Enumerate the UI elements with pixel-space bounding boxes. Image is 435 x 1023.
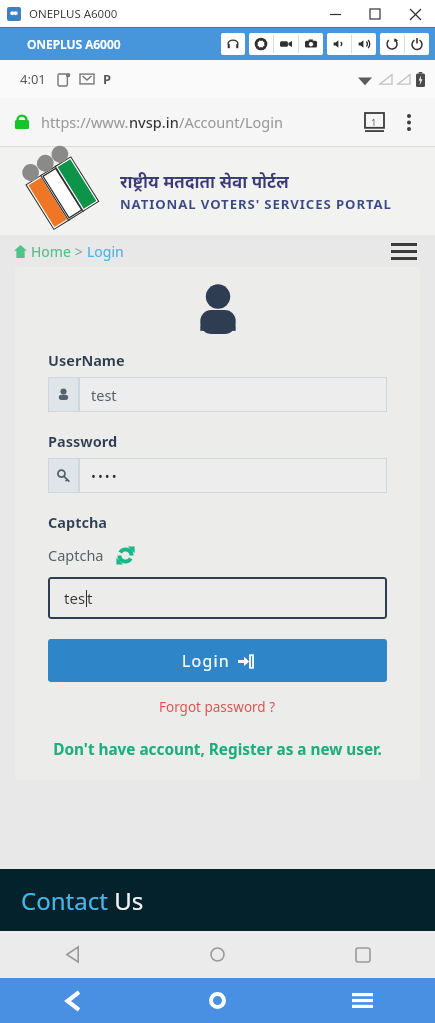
staticText: nvsp.in <box>129 112 179 132</box>
staticText: Password <box>48 431 118 451</box>
button[interactable]: tes <box>48 577 387 619</box>
staticText: Captcha <box>48 512 108 532</box>
button[interactable]: •••• <box>48 458 387 493</box>
button[interactable]: power <box>405 33 429 55</box>
button[interactable]: Home <box>145 931 290 978</box>
button[interactable]: vol+ <box>352 33 376 55</box>
staticText: ONEPLUS A6000 <box>27 36 121 52</box>
staticText: •••• <box>91 467 119 485</box>
staticText: test <box>91 385 117 405</box>
button[interactable]: gear <box>249 33 273 55</box>
button[interactable]: Home <box>145 978 290 1023</box>
staticText: Us <box>108 884 144 917</box>
staticText: ONEPLUS A6000 <box>29 6 118 22</box>
staticText: tes <box>64 588 86 608</box>
staticText: UserName <box>48 350 125 370</box>
staticText: Captcha <box>48 545 104 565</box>
staticText: Home <box>31 242 71 261</box>
button[interactable]: Menu <box>290 978 435 1023</box>
button[interactable]: Refresh captcha <box>114 544 136 566</box>
button[interactable]: Back <box>0 931 145 978</box>
staticText: https://www. <box>41 112 129 132</box>
staticText: Login <box>182 650 230 672</box>
button[interactable]: Contact <box>0 869 435 931</box>
button[interactable]: Login <box>48 639 387 682</box>
button[interactable]: Forgot password ? <box>159 698 276 716</box>
button[interactable]: video <box>274 33 298 55</box>
button[interactable]: refresh <box>380 33 404 55</box>
button[interactable]: Back <box>0 978 145 1023</box>
button[interactable]: Menu <box>389 236 419 266</box>
staticText: > <box>71 242 87 261</box>
button[interactable]: https://www. <box>0 98 435 146</box>
button[interactable]: Don't have account, Register as a new us… <box>53 739 382 760</box>
staticText: P <box>103 70 112 88</box>
button[interactable]: More options <box>397 110 421 134</box>
staticText: राष्ट्रीय मतदाता सेवा पोर्टल <box>120 170 289 193</box>
button[interactable]: Recents <box>290 931 435 978</box>
staticText: t <box>87 588 93 608</box>
button[interactable]: Maximize <box>355 0 395 28</box>
staticText: 1 <box>371 116 377 129</box>
staticText: Contact <box>21 884 108 917</box>
button[interactable]: Minimize <box>315 0 355 28</box>
button[interactable]: Close <box>395 0 435 28</box>
button[interactable]: camera <box>299 33 323 55</box>
staticText: /Account/Login <box>179 112 283 132</box>
staticText: NATIONAL VOTERS' SERVICES PORTAL <box>120 195 392 213</box>
staticText: 4:01 <box>20 70 46 88</box>
button[interactable]: headset <box>221 33 245 55</box>
button[interactable]: Home <box>14 242 124 261</box>
button[interactable]: vol- <box>327 33 351 55</box>
button[interactable]: test <box>48 377 387 412</box>
staticText: Login <box>87 242 124 261</box>
button[interactable]: Tabs <box>361 109 387 135</box>
